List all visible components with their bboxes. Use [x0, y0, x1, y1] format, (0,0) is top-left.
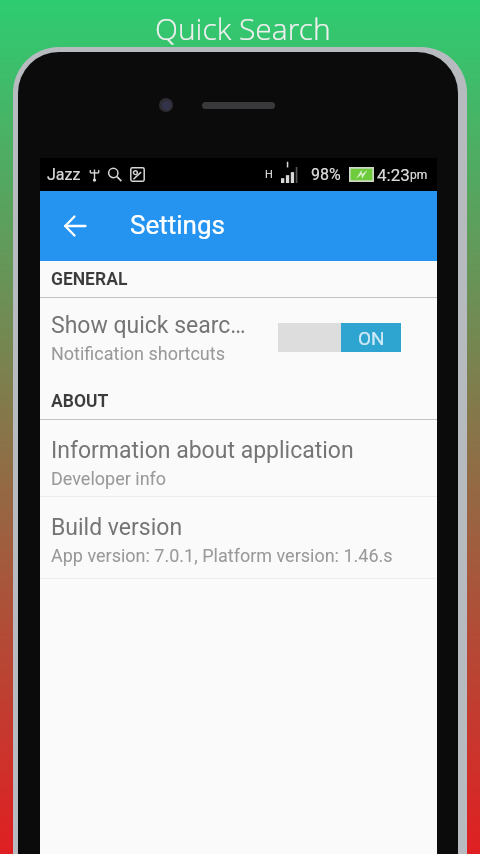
staticText: Notification shortcuts — [51, 343, 225, 364]
staticText: ON — [358, 327, 385, 349]
button[interactable]: Information about application — [40, 420, 437, 496]
button[interactable]: Build version — [40, 497, 437, 578]
staticText: GENERAL — [51, 269, 128, 290]
staticText: Quick Search — [155, 8, 331, 49]
staticText: 4:23 — [377, 165, 410, 185]
button[interactable]: Back — [40, 191, 109, 261]
staticText: ABOUT — [51, 391, 109, 412]
staticText: Build version — [51, 514, 183, 541]
button[interactable]: Show quick searc… — [40, 298, 437, 383]
staticText: Settings — [130, 210, 225, 240]
staticText: Jazz — [47, 165, 81, 184]
staticText: App version: 7.0.1, Platform version: 1.… — [51, 545, 393, 566]
staticText: 98% — [311, 165, 341, 184]
staticText: pm — [410, 168, 428, 182]
staticText: Information about application — [51, 437, 354, 464]
staticText: Developer info — [51, 468, 167, 489]
staticText: Show quick searc… — [51, 312, 246, 339]
staticText: H — [265, 168, 273, 181]
